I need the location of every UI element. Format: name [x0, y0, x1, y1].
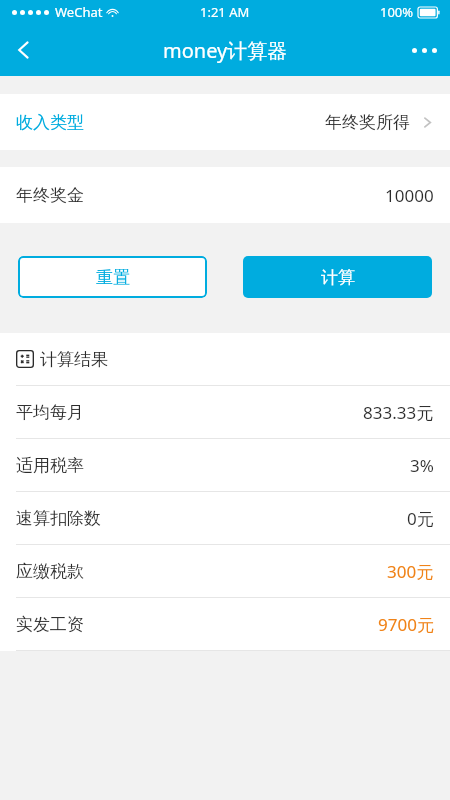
staticText: 适用税率	[16, 455, 84, 476]
staticText: money计算器	[163, 37, 288, 64]
button[interactable]: 重置	[18, 256, 207, 298]
button[interactable]: 平均每月	[0, 386, 450, 438]
button[interactable]: 实发工资	[0, 598, 450, 650]
button[interactable]: 应缴税款	[0, 545, 450, 597]
staticText: 速算扣除数	[16, 508, 101, 529]
staticText: 应缴税款	[16, 561, 84, 582]
button[interactable]: 速算扣除数	[0, 492, 450, 544]
staticText: 年终奖金	[16, 185, 84, 206]
staticText: 重置	[96, 267, 130, 288]
staticText: 9700元	[378, 613, 434, 636]
staticText: 收入类型	[16, 112, 84, 133]
staticText: 年终奖所得	[325, 112, 410, 133]
staticText: 计算结果	[40, 349, 108, 370]
button[interactable]: 年终奖金	[0, 167, 450, 223]
staticText: 1:21 AM	[200, 3, 250, 21]
staticText: 平均每月	[16, 402, 84, 423]
staticText: 3%	[410, 454, 434, 477]
staticText: 300元	[387, 560, 434, 583]
staticText: 0元	[407, 507, 434, 530]
staticText: 实发工资	[16, 614, 84, 635]
button[interactable]: 计算	[243, 256, 432, 298]
staticText: WeChat	[55, 3, 103, 21]
button[interactable]: More options	[398, 24, 450, 76]
staticText: 100%	[380, 3, 414, 21]
staticText: 10000	[385, 184, 434, 207]
staticText: 833.33元	[363, 401, 434, 424]
button[interactable]: 适用税率	[0, 439, 450, 491]
button[interactable]: Back	[0, 26, 48, 74]
button[interactable]: 收入类型	[0, 94, 450, 150]
staticText: 计算	[321, 267, 355, 288]
